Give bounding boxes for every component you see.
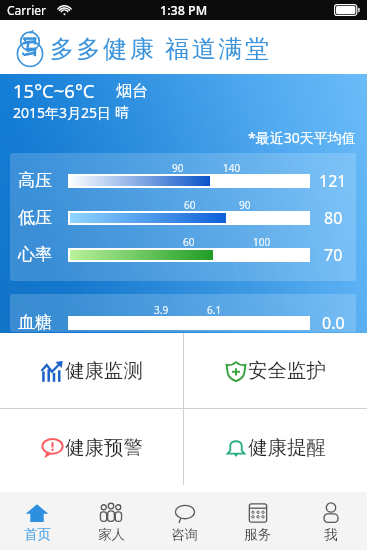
staticText: 晴 [115,104,129,122]
staticText: 90 [239,198,251,212]
button[interactable]: 健康预警 [0,409,183,485]
staticText: 首页 [24,526,51,543]
staticText: 高压 [18,170,52,191]
button[interactable]: 咨询 [148,492,221,550]
staticText: 60 [184,198,196,212]
staticText: 6.1 [207,303,222,317]
staticText: 健康预警 [65,435,143,460]
staticText: 低压 [18,207,52,228]
staticText: 90 [172,161,184,175]
staticText: 70 [324,244,343,266]
staticText: 1:38 PM [160,2,208,19]
staticText: 140 [223,161,241,175]
staticText: 15°C~6°C [13,78,95,103]
staticText: Carrier [7,2,47,18]
staticText: 家人 [98,526,125,543]
staticText: 心率 [18,244,52,265]
staticText: 多多健康 福道满堂 [50,31,272,64]
button[interactable]: 健康提醒 [184,409,367,485]
staticText: 烟台 [116,81,148,101]
staticText: 3.9 [154,303,169,317]
staticText: 0.0 [322,312,345,332]
button[interactable]: 我 [294,492,367,550]
staticText: 健康提醒 [248,435,326,460]
staticText: 80 [324,207,343,229]
staticText: 我 [324,526,338,543]
button[interactable]: 安全监护 [184,333,367,408]
staticText: 服务 [244,526,271,543]
staticText: 2015年3月25日 [13,103,112,122]
button[interactable]: 首页 [0,492,74,550]
staticText: *最近30天平均值 [248,128,356,147]
button[interactable]: 家人 [74,492,148,550]
staticText: 血糖 [18,312,52,332]
button[interactable]: 健康监测 [0,333,183,408]
staticText: 安全监护 [248,358,326,383]
staticText: 健康监测 [65,358,143,383]
button[interactable]: 服务 [221,492,294,550]
staticText: 60 [183,235,195,249]
staticText: 100 [253,235,271,249]
staticText: 咨询 [171,526,198,543]
staticText: 121 [319,170,347,192]
